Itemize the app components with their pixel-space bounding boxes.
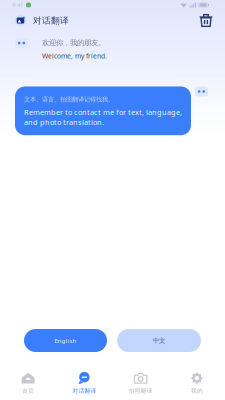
- staticText: Remember to contact me for text, languag…: [24, 107, 182, 127]
- staticText: 对话翻译: [72, 387, 96, 394]
- button[interactable]: 拍照翻译: [112, 368, 169, 398]
- staticText: 拍照翻译: [129, 387, 153, 394]
- staticText: 文本、语言、拍照翻译记得找我。: [24, 95, 114, 103]
- button[interactable]: 中文: [117, 329, 201, 352]
- button[interactable]: Clear conversation: [199, 13, 213, 28]
- button[interactable]: Play audio: [195, 86, 208, 96]
- staticText: 首页: [22, 387, 34, 394]
- button[interactable]: English: [24, 329, 107, 352]
- button[interactable]: Play audio: [15, 38, 28, 48]
- button[interactable]: 我的: [169, 368, 225, 398]
- staticText: Welcome, my friend.: [42, 51, 107, 60]
- staticText: 中文: [153, 336, 165, 345]
- button[interactable]: 对话翻译: [56, 368, 112, 398]
- staticText: English: [54, 336, 76, 345]
- staticText: 9:41: [12, 1, 23, 9]
- staticText: 我的: [191, 387, 203, 394]
- button[interactable]: 首页: [0, 368, 56, 398]
- staticText: 对话翻译: [33, 15, 69, 26]
- staticText: 欢迎你，我的朋友。: [42, 38, 105, 47]
